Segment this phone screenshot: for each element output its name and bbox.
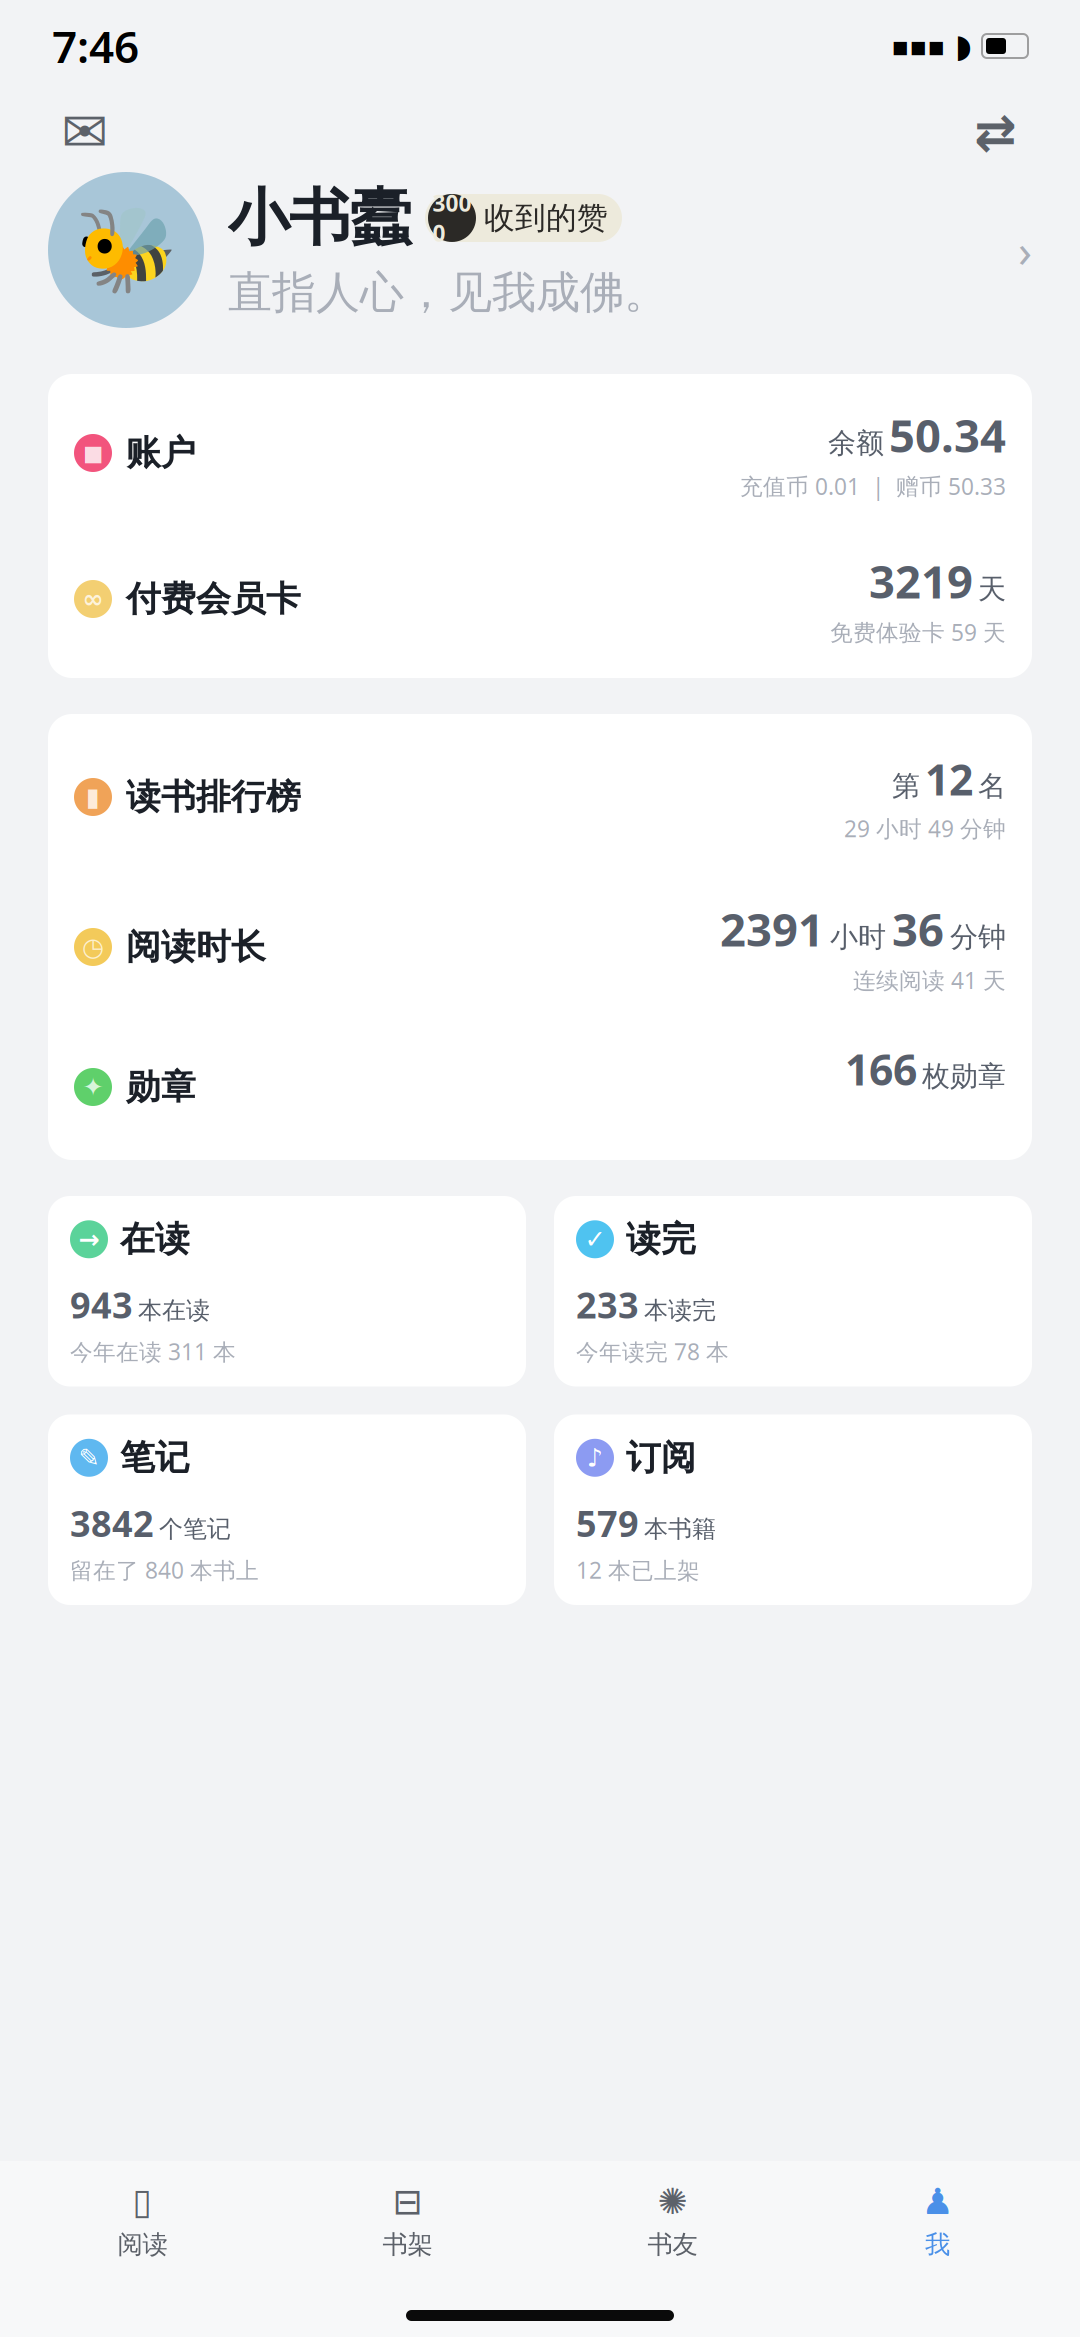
button[interactable]: ✓ [554,1196,1032,1386]
staticText: 🐝 [74,203,177,297]
staticText: ⊟ [392,2181,422,2222]
staticText: ∞ [82,585,103,613]
staticText: 小时 [830,920,886,954]
staticText: 免费体验卡 59 天 [830,617,1006,647]
staticText: 3842 [70,1499,154,1547]
staticText: 书友 [647,2229,697,2260]
staticText: 余额 [828,426,884,460]
button[interactable]: ✦ [48,1041,1032,1133]
staticText: ▯ [132,2181,152,2222]
staticText: 书架 [382,2229,432,2260]
staticText: 阅读 [117,2229,167,2260]
staticText: 在读 [120,1218,190,1261]
staticText: 第 [892,769,920,803]
staticText: 笔记 [120,1436,190,1479]
staticText: 我 [925,2229,950,2260]
staticText: ◗ [955,28,972,64]
staticText: 今年在读 311 本 [70,1336,236,1366]
staticText: 166 [845,1041,917,1097]
staticText: 天 [978,572,1006,606]
staticText: 29 小时 49 分钟 [844,813,1006,843]
staticText: 7:46 [52,17,139,75]
staticText: 充值币 0.01 | 赠币 50.33 [740,471,1006,501]
staticText: 连续阅读 41 天 [853,965,1006,995]
staticText: 12 [925,751,973,807]
staticText: 留在了 840 本书上 [70,1555,259,1585]
staticText: 233 [576,1281,639,1328]
staticText: 读书排行榜 [126,776,301,818]
staticText: 阅读时长 [126,926,266,968]
button[interactable]: ∞ [48,551,1032,647]
staticText: ◼ [82,439,103,467]
staticText: ✦ [82,1073,103,1101]
staticText: 36 [892,899,944,959]
staticText: 读完 [626,1218,696,1261]
staticText: 收到的赞 [484,199,608,237]
button[interactable]: ✎ [48,1414,526,1605]
staticText: ♟ [921,2181,953,2222]
button[interactable]: ▯ [10,2175,275,2266]
button[interactable]: ♟ [805,2175,1070,2266]
button[interactable]: → [48,1196,526,1386]
staticText: ✓ [584,1225,605,1254]
button[interactable]: ◷ [48,899,1032,995]
staticText: 付费会员卡 [126,578,301,620]
button[interactable]: ◼ [48,405,1032,501]
staticText: 今年读完 78 本 [576,1336,729,1366]
staticText: 3000 [432,188,471,248]
staticText: 本读完 [644,1296,716,1325]
staticText: 3219 [869,551,973,611]
staticText: 943 [70,1281,133,1328]
staticText: 直指人心，见我成佛。 [228,266,668,320]
staticText: 订阅 [626,1436,696,1479]
staticText: 50.34 [889,405,1006,465]
staticText: ✉ [61,100,108,164]
staticText: 账户 [126,432,196,474]
staticText: 本书籍 [644,1514,716,1544]
button[interactable]: ▮ [48,751,1032,843]
button[interactable]: Settings [966,103,1024,161]
staticText: ▮ [86,783,100,811]
button[interactable]: ⊟ [275,2175,540,2266]
staticText: → [78,1225,99,1254]
staticText: ✺ [657,2181,687,2222]
staticText: 2391 [720,899,824,959]
staticText: 枚勋章 [922,1059,1006,1093]
staticText: 勋章 [126,1066,196,1108]
staticText: ◷ [82,933,104,961]
button[interactable]: ♪ [554,1414,1032,1605]
staticText: 本在读 [138,1296,210,1325]
staticText: 12 本已上架 [576,1555,700,1585]
button[interactable]: 🐝 [0,172,1080,328]
staticText: ♪ [587,1443,603,1472]
staticText: ▪▪▪ [891,31,945,61]
staticText: 个笔记 [159,1514,231,1544]
staticText: 579 [576,1499,639,1547]
button[interactable]: Messages [56,103,114,161]
staticText: 小书蠹 [228,180,411,256]
staticText: ⇄ [974,103,1016,161]
staticText: ✎ [78,1443,99,1472]
staticText: › [1018,220,1032,280]
button[interactable]: ✺ [540,2175,805,2266]
staticText: 名 [978,769,1006,803]
staticText: 分钟 [950,920,1006,954]
